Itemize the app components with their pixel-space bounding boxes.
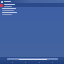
button[interactable]: Navigate up	[1, 1, 3, 3]
button[interactable]	[7, 58, 58, 60]
button[interactable]: Search	[24, 61, 26, 63]
button[interactable]: Profile	[51, 61, 53, 63]
button[interactable]: Library	[38, 61, 40, 63]
button[interactable]: Highlight	[0, 3, 64, 7]
other: Highlight	[0, 4, 3, 7]
button[interactable]: Home	[11, 61, 13, 63]
